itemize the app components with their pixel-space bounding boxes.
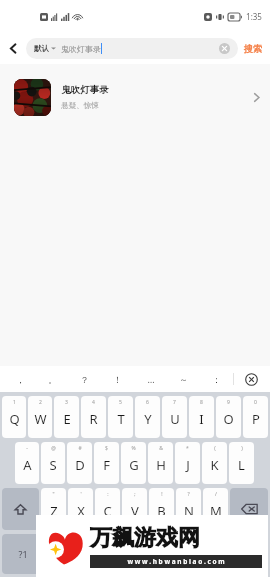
- button[interactable]: Enter: [228, 534, 268, 574]
- staticText: ?: [187, 491, 190, 498]
- staticText: E: [63, 410, 71, 428]
- staticText: D: [75, 456, 85, 474]
- button[interactable]: 中: [74, 534, 101, 574]
- staticText: 鬼吹灯事录: [61, 44, 101, 54]
- staticText: 悬疑、惊悚: [61, 101, 99, 110]
- staticText: X: [77, 502, 85, 520]
- staticText: ！: [113, 374, 122, 385]
- staticText: I: [199, 410, 204, 428]
- button[interactable]: ?1: [2, 534, 43, 574]
- staticText: :: [107, 491, 109, 498]
- button[interactable]: @: [41, 442, 65, 484]
- button[interactable]: Space: [103, 534, 197, 574]
- button[interactable]: ): [229, 442, 254, 484]
- button[interactable]: %: [121, 442, 146, 484]
- button[interactable]: $: [94, 442, 119, 484]
- staticText: 1: [13, 399, 16, 406]
- staticText: ;: [134, 491, 136, 498]
- button[interactable]: ': [68, 488, 93, 530]
- button[interactable]: *: [175, 442, 200, 484]
- staticText: 8: [200, 399, 203, 406]
- button[interactable]: Backspace: [230, 488, 268, 530]
- button[interactable]: ": [41, 488, 66, 530]
- staticText: Y: [144, 410, 152, 428]
- staticText: w w w . h b w a n b i a o . c o m: [127, 557, 225, 566]
- button[interactable]: ！: [101, 366, 134, 392]
- staticText: #: [78, 445, 82, 452]
- staticText: %: [131, 445, 136, 452]
- staticText: *: [186, 445, 189, 452]
- staticText: -: [26, 445, 28, 452]
- staticText: 9: [227, 399, 230, 406]
- staticText: P: [252, 410, 260, 428]
- button[interactable]: /: [203, 488, 228, 530]
- staticText: 3: [65, 399, 68, 406]
- staticText: L: [238, 456, 245, 474]
- staticText: !: [161, 491, 163, 498]
- button[interactable]: Back: [0, 32, 26, 64]
- staticText: 5: [119, 399, 122, 406]
- button[interactable]: 默认: [26, 38, 238, 59]
- button[interactable]: 8: [189, 396, 214, 438]
- button[interactable]: 搜索: [244, 43, 262, 54]
- staticText: N: [184, 502, 194, 520]
- button[interactable]: #: [67, 442, 92, 484]
- button[interactable]: ，: [4, 366, 36, 392]
- button[interactable]: 0: [243, 396, 268, 438]
- staticText: 2: [39, 399, 42, 406]
- staticText: ?1: [18, 548, 28, 560]
- button[interactable]: 6: [135, 396, 160, 438]
- staticText: Z: [50, 502, 58, 520]
- staticText: 7: [173, 399, 176, 406]
- staticText: F: [103, 456, 110, 474]
- staticText: ：: [212, 374, 221, 385]
- button[interactable]: :: [95, 488, 120, 530]
- staticText: 中: [83, 549, 92, 560]
- button[interactable]: (: [202, 442, 227, 484]
- staticText: 6: [146, 399, 149, 406]
- staticText: 0: [254, 399, 257, 406]
- button[interactable]: !: [149, 488, 174, 530]
- staticText: H: [156, 456, 166, 474]
- button[interactable]: …: [134, 366, 167, 392]
- button[interactable]: 5: [108, 396, 133, 438]
- button[interactable]: Close keyboard: [234, 366, 268, 392]
- button[interactable]: 7: [162, 396, 187, 438]
- button[interactable]: 2: [28, 396, 52, 438]
- button[interactable]: ：: [200, 366, 233, 392]
- button[interactable]: ～: [167, 366, 200, 392]
- button[interactable]: ?: [176, 488, 201, 530]
- button[interactable]: &: [148, 442, 173, 484]
- button[interactable]: 3: [54, 396, 79, 438]
- button[interactable]: ，: [45, 534, 72, 574]
- staticText: T: [117, 410, 125, 428]
- button[interactable]: Clear: [214, 38, 235, 59]
- staticText: ，: [54, 549, 63, 560]
- button[interactable]: 1: [2, 396, 26, 438]
- staticText: V: [131, 502, 139, 520]
- button[interactable]: 4: [81, 396, 106, 438]
- staticText: 4: [92, 399, 95, 406]
- staticText: G: [129, 456, 139, 474]
- staticText: 。: [48, 374, 57, 385]
- staticText: @: [51, 445, 56, 452]
- staticText: (: [214, 445, 216, 452]
- button[interactable]: ;: [122, 488, 147, 530]
- staticText: ": [52, 491, 55, 498]
- staticText: 默认: [34, 44, 49, 53]
- staticText: /: [215, 491, 217, 498]
- staticText: O: [223, 410, 234, 428]
- button[interactable]: 。: [36, 366, 68, 392]
- staticText: ': [80, 491, 82, 498]
- staticText: K: [210, 456, 219, 474]
- staticText: C: [103, 502, 112, 520]
- staticText: ): [241, 445, 243, 452]
- button[interactable]: 鬼吹灯事录: [0, 72, 270, 122]
- staticText: R: [89, 410, 98, 428]
- button[interactable]: 9: [216, 396, 241, 438]
- staticText: …: [147, 373, 155, 385]
- button[interactable]: ？: [68, 366, 101, 392]
- button[interactable]: -: [15, 442, 39, 484]
- button[interactable]: Shift: [2, 488, 39, 530]
- button[interactable]: 。: [199, 534, 226, 574]
